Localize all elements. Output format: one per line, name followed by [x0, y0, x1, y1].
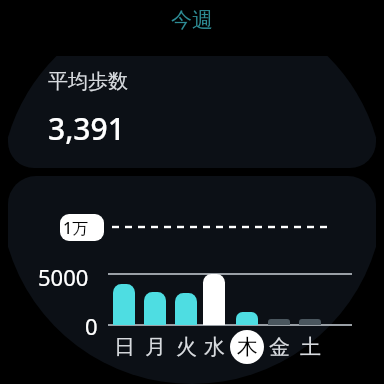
button[interactable]: 火: [172, 333, 200, 361]
staticText: 木: [237, 334, 258, 360]
staticText: 今週: [0, 7, 384, 33]
staticText: 金: [269, 334, 290, 360]
staticText: 0: [85, 311, 98, 341]
staticText: 水: [204, 334, 225, 360]
button[interactable]: 平均歩数: [48, 69, 128, 94]
button[interactable]: 金: [265, 333, 293, 361]
staticText: 月: [145, 334, 166, 360]
button[interactable]: 日: [110, 333, 138, 361]
staticText: 5000: [38, 262, 89, 292]
button[interactable]: 木: [233, 333, 261, 361]
staticText: 日: [114, 334, 135, 360]
staticText: 平均歩数: [48, 69, 128, 94]
staticText: 火: [176, 334, 197, 360]
button[interactable]: 水: [200, 333, 228, 361]
button[interactable]: 土: [296, 333, 324, 361]
staticText: 3,391: [48, 108, 125, 149]
button[interactable]: 月: [141, 333, 169, 361]
staticText: 1万: [63, 217, 89, 239]
staticText: 土: [300, 334, 321, 360]
